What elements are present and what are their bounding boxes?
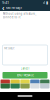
staticText: SEND MESSAGE [16, 73, 33, 77]
staticText: Without using a feature, connect to it [2, 12, 36, 19]
button[interactable]: Photo [0, 79, 10, 88]
staticText: ‹ [2, 4, 4, 12]
button[interactable]: SEND MESSAGE [2, 72, 47, 78]
button[interactable]: Photo [10, 79, 20, 88]
staticText: ıl ▮ [43, 0, 48, 5]
button[interactable]: Cancel [2, 65, 47, 72]
staticText: Cancel [20, 67, 29, 70]
button[interactable]: Back [1, 5, 4, 11]
staticText: New message [5, 6, 22, 10]
staticText: Message [4, 46, 15, 50]
button[interactable]: Photo [20, 79, 30, 88]
button[interactable]: Photo [40, 79, 49, 88]
staticText: 9:41 [2, 0, 9, 5]
button[interactable]: Photo [30, 79, 40, 88]
